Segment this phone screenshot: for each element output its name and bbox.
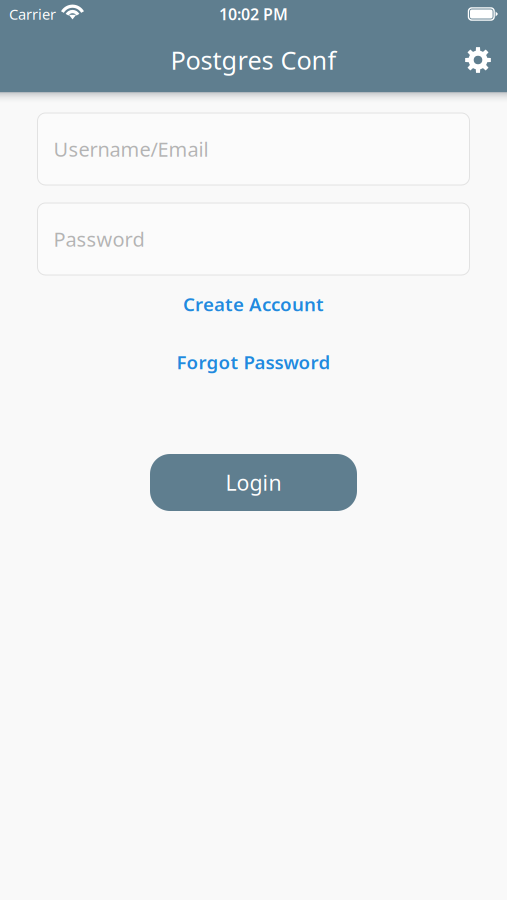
staticText: Username/Email [53, 136, 208, 162]
button[interactable]: Create Account [133, 285, 373, 323]
button[interactable]: Forgot Password [133, 343, 373, 381]
staticText: 10:02 PM [219, 3, 288, 25]
staticText: Create Account [183, 292, 324, 316]
staticText: Postgres Conf [170, 43, 336, 77]
button[interactable]: Login [150, 454, 357, 511]
staticText: Password [53, 226, 144, 252]
button[interactable]: Settings [454, 36, 502, 84]
staticText: Carrier [9, 4, 56, 24]
staticText: Forgot Password [176, 350, 330, 374]
staticText: Login [225, 468, 281, 497]
